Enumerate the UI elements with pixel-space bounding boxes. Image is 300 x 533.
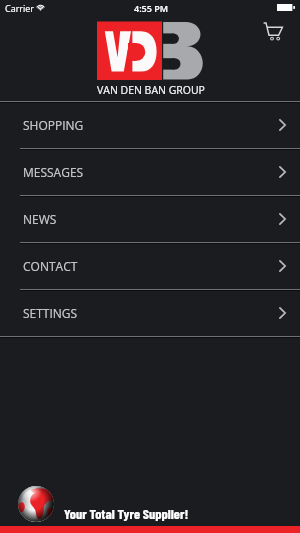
button[interactable]: SETTINGS	[0, 291, 300, 336]
button[interactable]: Shopping cart	[253, 11, 293, 51]
button[interactable]: SHOPPING	[0, 103, 300, 148]
staticText: SETTINGS	[23, 305, 78, 321]
button[interactable]: NEWS	[0, 197, 300, 242]
staticText: SHOPPING	[23, 117, 84, 133]
staticText: CONTACT	[23, 258, 78, 274]
button[interactable]: CONTACT	[0, 244, 300, 289]
staticText: Carrier	[5, 2, 35, 14]
staticText: Your Total Tyre Supplier!	[64, 505, 189, 522]
staticText: 4:55 PM	[134, 2, 169, 14]
staticText: VAN DEN BAN GROUP	[97, 83, 205, 97]
staticText: MESSAGES	[23, 164, 84, 180]
staticText: NEWS	[23, 211, 57, 227]
button[interactable]: MESSAGES	[0, 150, 300, 195]
